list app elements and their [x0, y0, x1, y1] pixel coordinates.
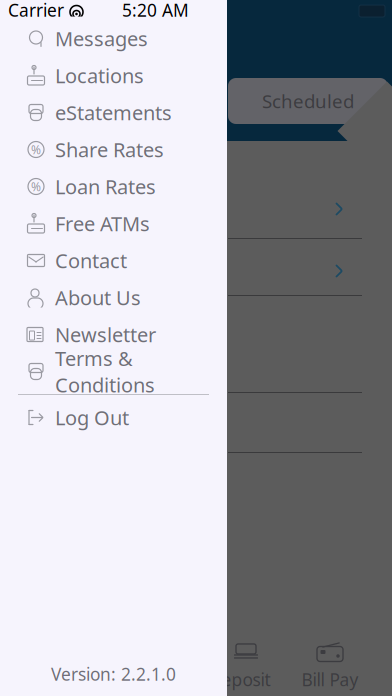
staticText: Messages — [55, 25, 148, 52]
button[interactable]: Terms & Conditions — [0, 353, 227, 390]
staticText: 5:20 AM — [122, 0, 189, 21]
button[interactable]: Log Out — [0, 399, 227, 436]
staticText: Bill Pay — [301, 668, 358, 691]
button[interactable]: Free ATMs — [0, 205, 227, 242]
button[interactable]: Locations — [0, 57, 227, 94]
staticText: Free ATMs — [55, 210, 150, 237]
staticText: eposit — [221, 668, 270, 691]
staticText: About Us — [55, 284, 141, 311]
staticText: % — [31, 141, 41, 157]
staticText: Log Out — [55, 404, 129, 431]
button[interactable]: About Us — [0, 279, 227, 316]
staticText: Contact — [55, 247, 127, 274]
staticText: Version: 2.2.1.0 — [51, 662, 176, 685]
button[interactable]: Contact — [0, 242, 227, 279]
staticText: % — [31, 178, 41, 194]
button[interactable]: Bill Pay — [288, 636, 372, 696]
button[interactable]: % — [0, 168, 227, 205]
staticText: eStatements — [55, 99, 172, 126]
button[interactable]: Newsletter — [0, 316, 227, 353]
staticText: Terms & Conditions — [55, 345, 155, 398]
staticText: Newsletter — [55, 321, 156, 348]
button[interactable]: % — [0, 131, 227, 168]
staticText: Locations — [55, 62, 144, 89]
staticText: Carrier — [8, 0, 64, 21]
staticText: Loan Rates — [55, 173, 156, 200]
staticText: Scheduled — [262, 89, 354, 113]
staticText: Share Rates — [55, 136, 164, 163]
button[interactable]: eposit — [204, 636, 288, 696]
button[interactable]: Messages — [0, 20, 227, 57]
button[interactable]: eStatements — [0, 94, 227, 131]
